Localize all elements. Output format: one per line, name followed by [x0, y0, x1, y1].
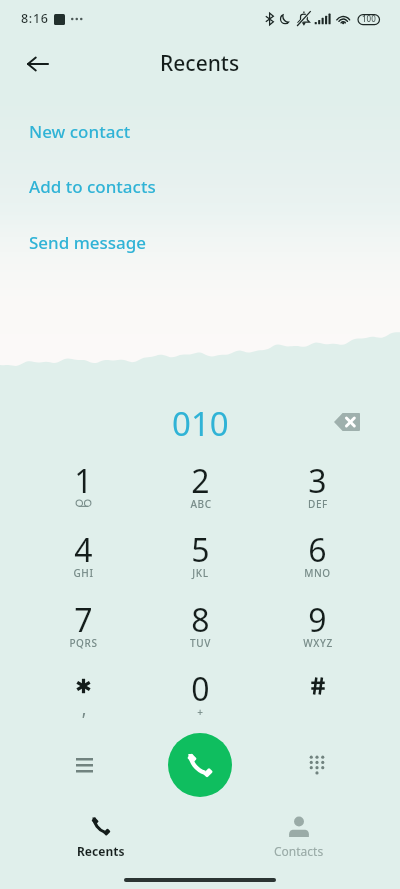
staticText: 1	[74, 459, 93, 503]
button[interactable]: Contacts	[249, 810, 349, 859]
staticText: 8:16	[21, 10, 49, 27]
button[interactable]: New contact	[0, 109, 400, 153]
staticText: GHI	[73, 566, 94, 580]
staticText: 3	[308, 459, 327, 503]
staticText: Recents	[160, 49, 240, 78]
staticText: JKL	[192, 566, 209, 580]
staticText: 8	[191, 598, 210, 642]
staticText: 2	[191, 459, 210, 503]
staticText: PQRS	[69, 636, 98, 650]
staticText: 100	[362, 13, 376, 24]
staticText: Contacts	[274, 843, 324, 859]
staticText: Send message	[29, 231, 147, 254]
staticText: Recents	[77, 843, 125, 859]
button[interactable]: Backspace	[325, 401, 369, 445]
staticText: TUV	[190, 636, 211, 650]
button[interactable]: Call	[168, 733, 232, 797]
staticText: 6	[308, 528, 327, 572]
button[interactable]: 0	[142, 667, 259, 725]
staticText: 5	[191, 528, 210, 572]
button[interactable]: 1	[25, 459, 142, 517]
button[interactable]: Send message	[0, 220, 400, 264]
button[interactable]: 5	[142, 528, 259, 586]
button[interactable]	[25, 667, 142, 725]
staticText: 9	[308, 598, 327, 642]
staticText: 7	[74, 598, 93, 642]
button[interactable]: 9	[259, 598, 376, 656]
staticText: DEF	[308, 497, 328, 511]
staticText: +	[197, 705, 204, 719]
staticText: ABC	[190, 497, 212, 511]
button[interactable]: 8	[142, 598, 259, 656]
button[interactable]: Back	[17, 43, 59, 85]
button[interactable]: 4	[25, 528, 142, 586]
staticText: Add to contacts	[29, 175, 156, 198]
button[interactable]: 6	[259, 528, 376, 586]
button[interactable]: 7	[25, 598, 142, 656]
staticText: 0	[191, 667, 210, 711]
staticText: New contact	[29, 120, 131, 143]
button[interactable]: More options	[63, 744, 105, 786]
button[interactable]: 3	[259, 459, 376, 517]
staticText: 4	[74, 528, 93, 572]
staticText: WXYZ	[303, 636, 333, 650]
staticText: MNO	[304, 566, 331, 580]
button[interactable]: 2	[142, 459, 259, 517]
staticText: 010	[172, 401, 229, 446]
button[interactable]: Recents	[51, 810, 151, 859]
button[interactable]: Keypad	[296, 744, 338, 786]
button[interactable]	[259, 667, 376, 725]
button[interactable]: Add to contacts	[0, 164, 400, 208]
